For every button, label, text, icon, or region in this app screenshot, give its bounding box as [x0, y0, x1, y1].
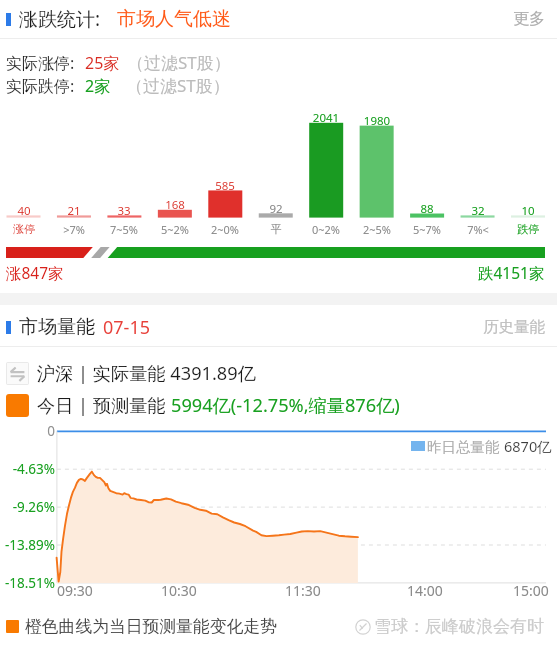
- staticText: 平: [251, 222, 301, 236]
- staticText: 市场人气低迷: [117, 7, 231, 31]
- button[interactable]: 切换市场: [6, 362, 29, 385]
- staticText: 6870亿: [504, 436, 552, 456]
- staticText: 2~0%: [200, 222, 250, 237]
- staticText: 07-15: [103, 315, 150, 340]
- staticText: 10:30: [161, 581, 197, 600]
- staticText: 32: [453, 203, 503, 219]
- staticText: 0~2%: [301, 222, 351, 237]
- button[interactable]: 市场量能: [0, 308, 557, 346]
- staticText: 40: [0, 203, 49, 219]
- staticText: 5~2%: [150, 222, 200, 237]
- staticText: 14:00: [407, 581, 443, 600]
- staticText: 实际涨停:: [6, 52, 75, 74]
- staticText: 88: [402, 201, 452, 217]
- staticText: 雪球：辰峰破浪会有时: [374, 616, 544, 637]
- staticText: 跌4151家: [478, 262, 545, 283]
- button[interactable]: 涨跌统计:: [0, 0, 557, 38]
- staticText: 更多: [513, 9, 545, 29]
- staticText: 585: [200, 178, 250, 194]
- staticText: 2041: [301, 110, 351, 126]
- staticText: 92: [251, 201, 301, 217]
- staticText: 11:30: [285, 581, 321, 600]
- staticText: 0: [0, 422, 55, 440]
- staticText: 市场量能: [19, 315, 95, 339]
- staticText: -18.51%: [0, 574, 55, 592]
- staticText: 10: [503, 203, 553, 219]
- staticText: -4.63%: [0, 460, 55, 478]
- staticText: 2家: [85, 75, 111, 97]
- staticText: 涨停: [0, 222, 49, 236]
- staticText: 涨跌统计:: [19, 6, 101, 32]
- staticText: （过滤ST股）: [127, 51, 231, 74]
- staticText: 7~5%: [99, 222, 149, 237]
- staticText: 15:00: [513, 581, 549, 600]
- staticText: -9.26%: [0, 498, 55, 516]
- staticText: 涨847家: [6, 262, 64, 283]
- staticText: 2~5%: [352, 222, 402, 237]
- staticText: 今日 | 预测量能: [37, 393, 171, 418]
- staticText: 33: [99, 203, 149, 219]
- staticText: 5~7%: [402, 222, 452, 237]
- staticText: 昨日总量能: [427, 436, 504, 456]
- staticText: 1980: [352, 113, 402, 129]
- staticText: 21: [49, 203, 99, 219]
- staticText: 橙色曲线为当日预测量能变化走势: [25, 616, 277, 637]
- staticText: -13.89%: [0, 536, 55, 554]
- staticText: 168: [150, 197, 200, 213]
- staticText: 7%<: [453, 222, 503, 237]
- staticText: 实际跌停:: [6, 75, 75, 97]
- staticText: 跌停: [503, 222, 553, 236]
- staticText: 沪深 | 实际量能 4391.89亿: [37, 361, 256, 386]
- staticText: 5994亿(-12.75%,缩量876亿): [171, 393, 400, 418]
- staticText: 历史量能: [483, 317, 545, 337]
- staticText: （过滤ST股）: [126, 74, 230, 97]
- staticText: 09:30: [57, 581, 93, 600]
- staticText: 25家: [85, 52, 120, 74]
- staticText: >7%: [49, 222, 99, 237]
